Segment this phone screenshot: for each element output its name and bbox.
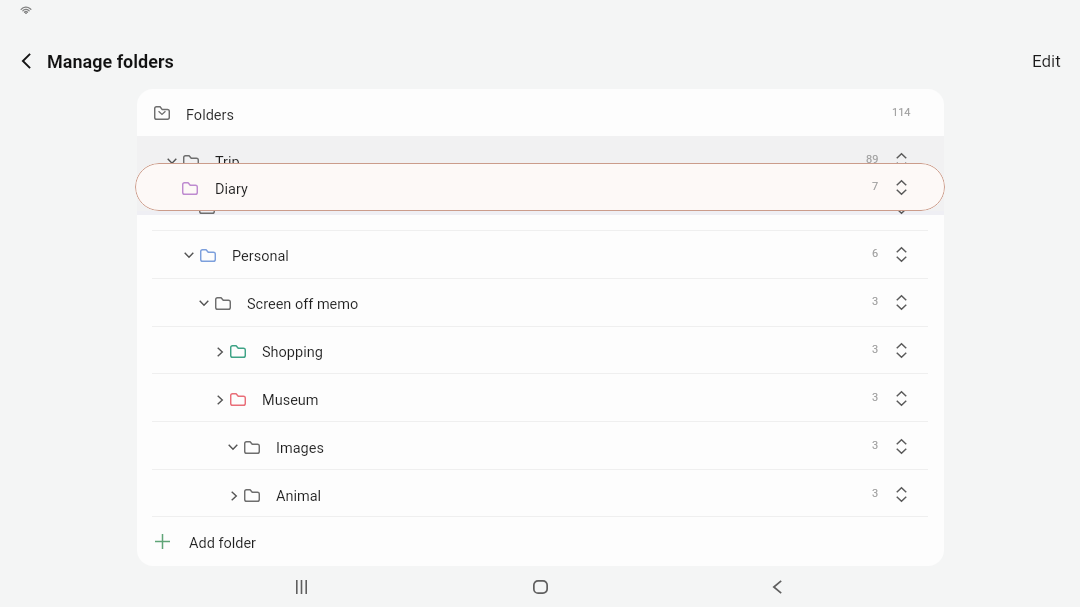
- button[interactable]: Edit: [1016, 39, 1077, 83]
- button[interactable]: Screen off memo: [137, 278, 944, 325]
- staticText: Edit: [1032, 51, 1061, 71]
- button[interactable]: Home: [516, 563, 564, 607]
- staticText: Screen off memo: [247, 296, 359, 313]
- staticText: 3: [872, 295, 879, 308]
- staticText: Animal: [276, 488, 322, 505]
- button[interactable]: Recent apps: [277, 563, 325, 607]
- button[interactable]: Trip: [137, 136, 944, 183]
- button[interactable]: Navigate up: [4, 39, 48, 83]
- staticText: Museum: [262, 392, 319, 409]
- staticText: 7: [872, 180, 879, 193]
- staticText: Trip: [215, 154, 240, 171]
- button[interactable]: Folders: [137, 89, 944, 136]
- button[interactable]: Shopping: [137, 326, 944, 373]
- button[interactable]: Back: [753, 563, 801, 607]
- staticText: 3: [872, 343, 879, 356]
- staticText: Shopping: [262, 344, 323, 361]
- staticText: 114: [892, 106, 911, 119]
- button[interactable]: Images: [137, 422, 944, 469]
- button[interactable]: Add folder: [137, 517, 944, 566]
- staticText: 89: [866, 153, 879, 166]
- button[interactable]: Diary: [135, 163, 945, 211]
- staticText: Images: [276, 440, 324, 457]
- staticText: Diary: [215, 181, 248, 198]
- button[interactable]: Personal: [137, 230, 944, 277]
- staticText: Manage folders: [47, 51, 174, 72]
- button[interactable]: Animal: [137, 470, 944, 517]
- staticText: Add folder: [189, 535, 257, 552]
- staticText: 3: [872, 439, 879, 452]
- staticText: 3: [872, 487, 879, 500]
- staticText: Personal: [232, 248, 289, 265]
- staticText: 3: [872, 391, 879, 404]
- staticText: Folders: [186, 107, 234, 124]
- button[interactable]: Museum: [137, 374, 944, 421]
- staticText: 6: [872, 247, 879, 260]
